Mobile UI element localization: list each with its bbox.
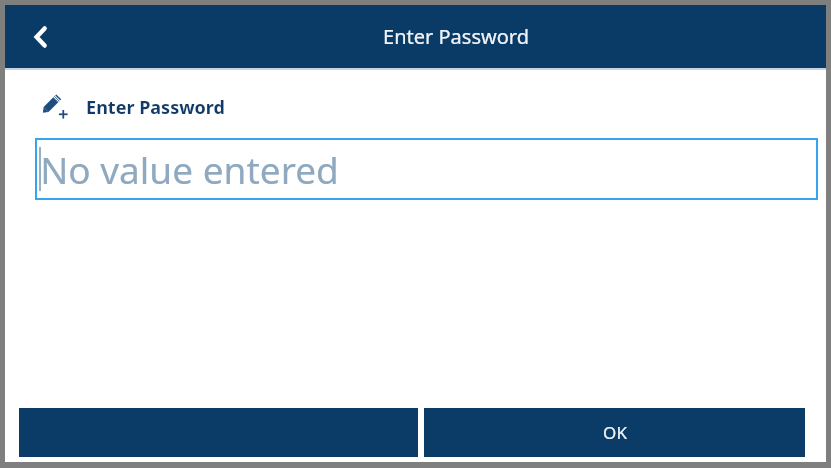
staticText: Enter Password (383, 23, 529, 50)
staticText: No value entered (40, 144, 339, 194)
staticText: Enter Password (86, 95, 225, 120)
button[interactable]: No value entered (35, 138, 818, 200)
button[interactable]: OK (424, 408, 805, 457)
staticText: OK (603, 421, 627, 444)
button[interactable]: Back (5, 5, 77, 68)
